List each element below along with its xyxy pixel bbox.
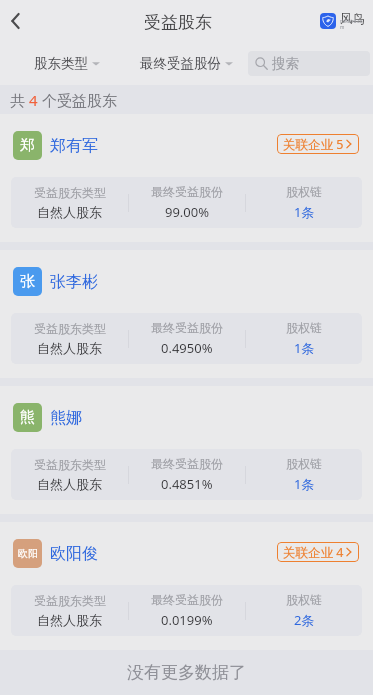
staticText: 共 <box>10 90 29 110</box>
staticText: 0.0199% <box>161 611 213 629</box>
staticText: 受益股东类型 <box>34 457 106 472</box>
button[interactable]: Back <box>0 0 31 42</box>
button[interactable]: 股东类型 <box>34 55 100 72</box>
staticText: 关联企业 4 <box>283 544 344 561</box>
staticText: 1条 <box>294 339 315 357</box>
staticText: 1条 <box>294 475 315 493</box>
staticText: 张李彬 <box>50 272 98 292</box>
staticText: 搜索 <box>272 55 299 72</box>
button[interactable]: 欧阳 <box>0 522 373 650</box>
staticText: 自然人股东 <box>37 204 102 220</box>
button[interactable]: 最终受益股份 <box>140 55 233 72</box>
staticText: 欧阳俊 <box>50 544 98 564</box>
staticText: 受益股东类型 <box>34 321 106 336</box>
button[interactable]: riskbird logo <box>320 11 365 30</box>
staticText: 郑有军 <box>50 136 98 156</box>
staticText: 最终受益股份 <box>140 55 221 72</box>
staticText: 股权链 <box>286 592 322 607</box>
staticText: 熊娜 <box>50 408 82 428</box>
staticText: 0.4851% <box>161 475 213 493</box>
button[interactable]: 关联企业 4 <box>277 542 359 562</box>
staticText: 郑 <box>20 136 35 155</box>
button[interactable]: 张 <box>0 250 373 378</box>
staticText: 受益股东 <box>144 12 212 33</box>
staticText: 欧阳 <box>18 547 38 560</box>
staticText: 最终受益股份 <box>151 184 223 199</box>
staticText: 受益股东类型 <box>34 185 106 200</box>
staticText: 最终受益股份 <box>151 320 223 335</box>
staticText: 自然人股东 <box>37 340 102 356</box>
button[interactable]: 熊 <box>0 386 373 514</box>
staticText: 个受益股东 <box>38 90 117 110</box>
staticText: 1条 <box>294 203 315 221</box>
staticText: 最终受益股份 <box>151 456 223 471</box>
staticText: 2条 <box>294 611 315 629</box>
button[interactable]: 关联企业 5 <box>277 134 359 154</box>
staticText: 股权链 <box>286 456 322 471</box>
staticText: 张 <box>20 272 35 291</box>
staticText: 股权链 <box>286 320 322 335</box>
staticText: 没有更多数据了 <box>127 662 246 683</box>
staticText: 0.4950% <box>161 339 213 357</box>
button[interactable]: Search <box>248 51 370 76</box>
staticText: 关联企业 5 <box>283 136 344 153</box>
button[interactable]: 郑 <box>0 114 373 242</box>
staticText: 股东类型 <box>34 55 88 72</box>
staticText: 自然人股东 <box>37 476 102 492</box>
staticText: 99.00% <box>165 203 210 221</box>
staticText: 受益股东类型 <box>34 593 106 608</box>
staticText: 股权链 <box>286 184 322 199</box>
staticText: 自然人股东 <box>37 612 102 628</box>
staticText: riskbird.com <box>340 18 365 30</box>
staticText: 风鸟 <box>340 11 365 27</box>
staticText: 4 <box>29 90 38 110</box>
staticText: 最终受益股份 <box>151 592 223 607</box>
staticText: 熊 <box>20 408 35 427</box>
